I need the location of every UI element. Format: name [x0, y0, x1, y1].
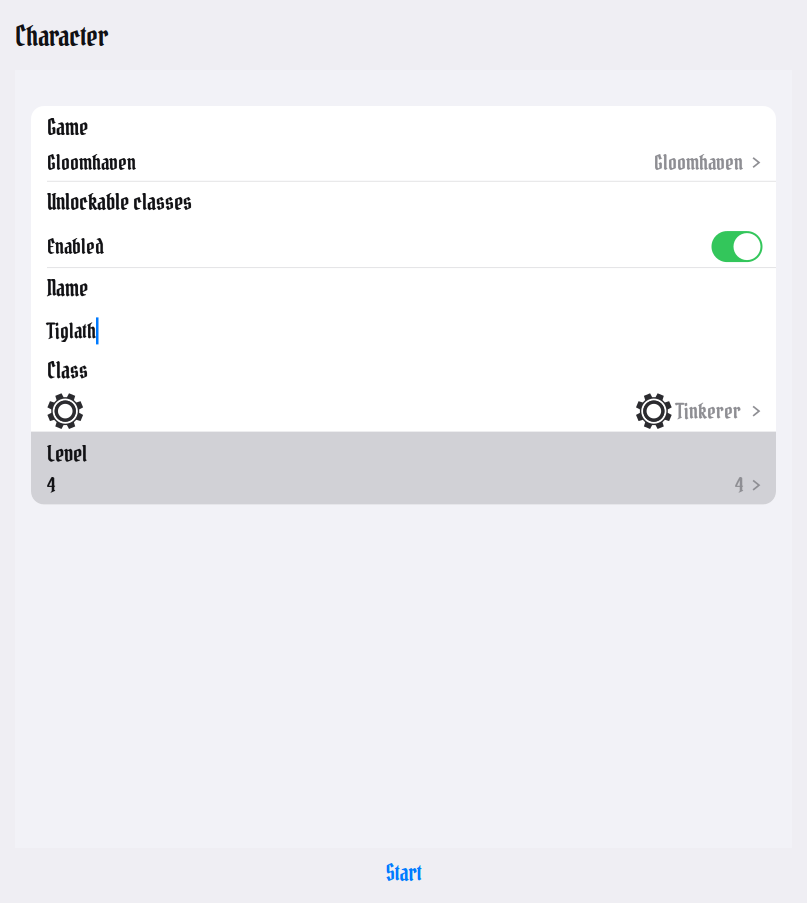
button[interactable]: Tinkerer — [31, 394, 776, 429]
staticText: Enabled — [47, 233, 104, 260]
button[interactable]: 4 — [31, 472, 776, 498]
staticText: Name — [47, 274, 88, 302]
staticText: Gloomhaven — [654, 149, 743, 176]
staticText: Unlockable classes — [47, 188, 192, 216]
staticText: Tinkerer — [676, 398, 741, 424]
staticText: Gloomhaven — [47, 149, 136, 176]
staticText: Class — [47, 356, 88, 385]
button[interactable]: Gloomhaven — [31, 149, 776, 176]
staticText: 4 — [735, 472, 743, 498]
button[interactable]: Start — [0, 848, 807, 898]
staticText: Game — [47, 113, 88, 141]
staticText: 4 — [47, 472, 55, 498]
button[interactable]: Unlockable classes enabled — [711, 231, 762, 262]
staticText: Level — [47, 440, 87, 468]
staticText: Character — [15, 18, 109, 54]
staticText: Tiglath — [47, 318, 96, 344]
staticText: Start — [385, 859, 421, 887]
